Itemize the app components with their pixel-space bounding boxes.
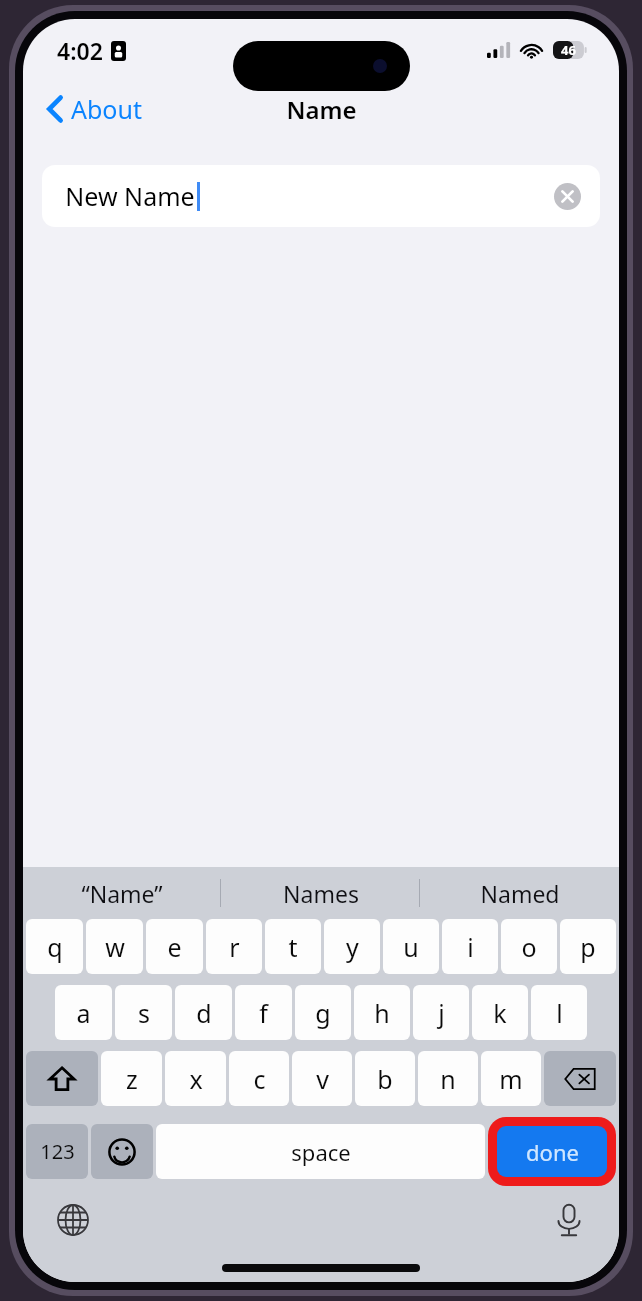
staticText: q [47, 930, 63, 964]
staticText: Named [480, 878, 560, 909]
button[interactable]: r [206, 919, 262, 974]
button[interactable]: “Name” [23, 867, 221, 919]
staticText: e [167, 930, 182, 964]
staticText: b [377, 1062, 393, 1096]
staticText: n [440, 1062, 456, 1096]
staticText: p [580, 930, 596, 964]
button[interactable]: New Name [42, 165, 600, 227]
staticText: g [315, 996, 331, 1030]
button[interactable]: k [472, 985, 528, 1040]
button[interactable]: Clear text [554, 183, 581, 210]
staticText: space [291, 1137, 351, 1167]
button[interactable]: v [292, 1051, 352, 1106]
staticText: o [521, 930, 537, 964]
button[interactable]: s [115, 985, 172, 1040]
button[interactable]: About [23, 84, 156, 134]
button[interactable]: w [86, 919, 143, 974]
staticText: r [229, 930, 240, 964]
staticText: c [253, 1062, 266, 1096]
button[interactable]: Backspace [544, 1051, 616, 1106]
staticText: d [196, 996, 212, 1030]
button[interactable]: x [165, 1051, 226, 1106]
button[interactable]: Change keyboard [51, 1198, 95, 1242]
button[interactable]: j [413, 985, 469, 1040]
staticText: Names [283, 878, 359, 909]
button[interactable]: f [235, 985, 292, 1040]
button[interactable]: t [265, 919, 321, 974]
button[interactable]: d [175, 985, 232, 1040]
button[interactable]: l [531, 985, 587, 1040]
staticText: “Name” [81, 878, 163, 909]
staticText: k [493, 996, 507, 1030]
staticText: m [499, 1062, 523, 1096]
staticText: 46 [561, 41, 576, 59]
staticText: w [105, 930, 125, 964]
staticText: y [346, 930, 359, 964]
button[interactable]: u [383, 919, 439, 974]
button[interactable]: Shift [26, 1051, 98, 1106]
staticText: h [374, 996, 390, 1030]
button[interactable]: done [497, 1126, 607, 1177]
button[interactable]: z [101, 1051, 162, 1106]
button[interactable]: Emoji [91, 1124, 153, 1179]
button[interactable]: y [324, 919, 380, 974]
staticText: x [189, 1062, 203, 1096]
button[interactable]: b [355, 1051, 415, 1106]
button[interactable]: g [295, 985, 351, 1040]
button[interactable]: c [229, 1051, 289, 1106]
button[interactable]: n [418, 1051, 478, 1106]
staticText: t [288, 930, 298, 964]
staticText: done [526, 1137, 579, 1167]
staticText: New Name [65, 179, 195, 213]
staticText: u [403, 930, 419, 964]
staticText: Name [286, 93, 357, 126]
staticText: l [556, 996, 563, 1030]
staticText: 123 [40, 1138, 75, 1165]
button[interactable]: e [146, 919, 203, 974]
staticText: f [259, 996, 268, 1030]
staticText: j [438, 996, 445, 1030]
staticText: v [316, 1062, 329, 1096]
staticText: 4:02 [57, 35, 103, 66]
button[interactable]: Named [420, 867, 619, 919]
button[interactable]: a [55, 985, 112, 1040]
button[interactable]: h [354, 985, 410, 1040]
button[interactable]: o [501, 919, 557, 974]
button[interactable]: p [560, 919, 616, 974]
staticText: i [467, 930, 474, 964]
staticText: a [76, 996, 91, 1030]
button[interactable]: 123 [26, 1124, 88, 1179]
button[interactable]: space [156, 1124, 485, 1179]
button[interactable]: q [26, 919, 83, 974]
staticText: s [138, 996, 150, 1030]
button[interactable]: Names [221, 867, 420, 919]
button[interactable]: i [442, 919, 498, 974]
button[interactable]: Dictate [547, 1198, 591, 1242]
staticText: z [126, 1062, 138, 1096]
staticText: About [71, 92, 142, 126]
button[interactable]: m [481, 1051, 541, 1106]
